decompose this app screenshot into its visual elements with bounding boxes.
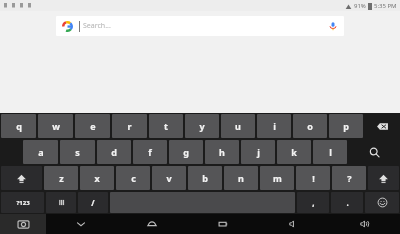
- button[interactable]: a: [23, 140, 58, 164]
- button[interactable]: Recents: [187, 214, 258, 234]
- button[interactable]: ?123: [1, 192, 44, 213]
- staticText: k: [291, 146, 297, 158]
- staticText: .: [346, 197, 349, 208]
- button[interactable]: i: [257, 114, 291, 138]
- staticText: e: [90, 120, 96, 132]
- staticText: r: [127, 120, 132, 132]
- staticText: p: [343, 120, 349, 132]
- button[interactable]: x: [80, 166, 114, 190]
- staticText: l: [329, 146, 332, 158]
- staticText: z: [59, 172, 64, 184]
- button[interactable]: /: [78, 192, 108, 213]
- button[interactable]: b: [188, 166, 222, 190]
- button[interactable]: o: [293, 114, 327, 138]
- button[interactable]: p: [329, 114, 363, 138]
- button[interactable]: e: [75, 114, 110, 138]
- button[interactable]: t: [149, 114, 183, 138]
- button[interactable]: c: [116, 166, 150, 190]
- staticText: Search...: [83, 21, 111, 31]
- staticText: o: [307, 120, 313, 132]
- button[interactable]: j: [241, 140, 275, 164]
- button[interactable]: Settings: [46, 192, 76, 213]
- button[interactable]: h: [205, 140, 239, 164]
- button[interactable]: .: [331, 192, 363, 213]
- staticText: w: [52, 120, 60, 132]
- button[interactable]: Search: [349, 140, 399, 164]
- button[interactable]: u: [221, 114, 255, 138]
- button[interactable]: k: [277, 140, 311, 164]
- button[interactable]: f: [133, 140, 167, 164]
- staticText: m: [273, 172, 282, 184]
- button[interactable]: ?: [332, 166, 366, 190]
- button[interactable]: w: [38, 114, 73, 138]
- staticText: a: [38, 146, 44, 158]
- button[interactable]: Hide keyboard: [46, 214, 116, 234]
- staticText: n: [238, 172, 244, 184]
- staticText: ?123: [16, 199, 30, 207]
- button[interactable]: Shift: [368, 166, 399, 190]
- button[interactable]: Shift: [1, 166, 42, 190]
- staticText: j: [257, 146, 260, 158]
- staticText: ?: [347, 172, 352, 184]
- button[interactable]: g: [169, 140, 203, 164]
- staticText: y: [199, 120, 205, 132]
- button[interactable]: r: [112, 114, 147, 138]
- staticText: h: [219, 146, 225, 158]
- staticText: q: [16, 120, 22, 132]
- staticText: i: [273, 120, 276, 132]
- button[interactable]: y: [185, 114, 219, 138]
- staticText: d: [111, 146, 117, 158]
- button[interactable]: Voice search: [328, 21, 338, 31]
- staticText: g: [183, 146, 189, 158]
- staticText: /: [91, 197, 95, 208]
- staticText: x: [94, 172, 100, 184]
- staticText: ,: [312, 197, 315, 208]
- button[interactable]: Screenshot: [0, 214, 46, 234]
- staticText: v: [166, 172, 172, 184]
- button[interactable]: z: [44, 166, 78, 190]
- button[interactable]: Search...: [56, 16, 344, 36]
- staticText: u: [235, 120, 241, 132]
- staticText: t: [164, 120, 168, 132]
- button[interactable]: d: [97, 140, 131, 164]
- staticText: b: [202, 172, 208, 184]
- button[interactable]: n: [224, 166, 258, 190]
- staticText: c: [131, 172, 136, 184]
- staticText: 5:35 PM: [374, 2, 397, 10]
- button[interactable]: m: [260, 166, 294, 190]
- button[interactable]: Backspace: [365, 114, 399, 138]
- staticText: s: [75, 146, 80, 158]
- button[interactable]: Home: [116, 214, 187, 234]
- button[interactable]: Volume down: [258, 214, 329, 234]
- staticText: 91%: [354, 2, 366, 10]
- button[interactable]: q: [1, 114, 36, 138]
- button[interactable]: Emoji: [365, 192, 399, 213]
- button[interactable]: l: [313, 140, 347, 164]
- staticText: !: [312, 172, 315, 184]
- button[interactable]: s: [60, 140, 95, 164]
- button[interactable]: !: [296, 166, 330, 190]
- button[interactable]: ,: [297, 192, 329, 213]
- staticText: f: [148, 146, 152, 158]
- button[interactable]: Volume up: [329, 214, 400, 234]
- button[interactable]: v: [152, 166, 186, 190]
